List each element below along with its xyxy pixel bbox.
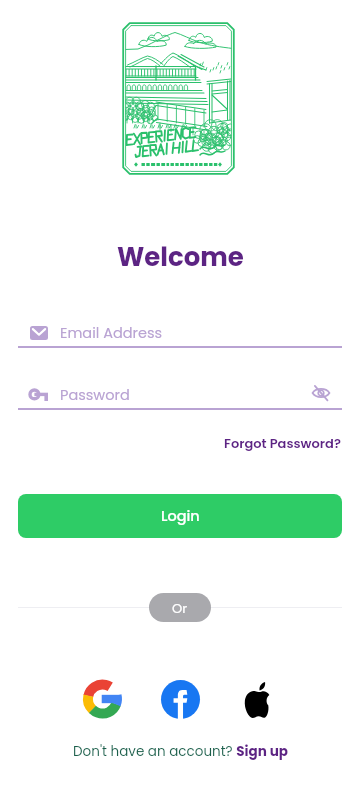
staticText: Email Address	[60, 323, 163, 343]
button[interactable]: Sign in with Facebook	[157, 676, 203, 722]
button[interactable]: Forgot Password?	[223, 431, 342, 455]
button[interactable]: Sign in with Apple	[235, 676, 281, 722]
button[interactable]: Show password	[308, 382, 334, 408]
staticText: Password	[60, 385, 130, 405]
staticText: Forgot Password?	[224, 434, 341, 452]
button[interactable]: Login	[18, 494, 342, 538]
staticText: Welcome	[117, 239, 244, 275]
staticText: Or	[172, 599, 188, 617]
button[interactable]: Sign in with Google	[79, 676, 125, 722]
staticText: Don't have an account? Sign up	[73, 742, 288, 761]
button[interactable]: Don't have an account? Sign up	[71, 740, 290, 763]
staticText: Login	[161, 506, 200, 526]
